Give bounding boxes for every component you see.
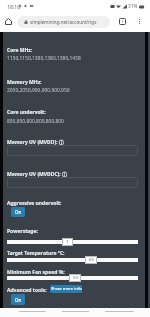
staticText: Show more info bbox=[51, 286, 82, 292]
staticText: 18:16 bbox=[7, 3, 21, 10]
staticText: On bbox=[15, 297, 22, 303]
staticText: Powerstage: bbox=[7, 228, 38, 235]
staticText: Memory MHz: bbox=[7, 79, 42, 86]
button[interactable]: simplemining.net/account/rigs bbox=[17, 16, 110, 28]
button[interactable]: 1 bbox=[62, 238, 73, 246]
staticText: Core undervolt: bbox=[7, 109, 46, 116]
button[interactable]: More options bbox=[133, 15, 146, 28]
button[interactable]: On bbox=[11, 207, 25, 217]
staticText: Memory UV (MVDD): ⓘ bbox=[7, 139, 64, 146]
staticText: Target Temperature °C: bbox=[7, 250, 65, 257]
button[interactable]: 50 bbox=[69, 274, 81, 282]
button[interactable]: 65 bbox=[85, 256, 97, 264]
staticText: Advanced tools: bbox=[7, 287, 47, 294]
staticText: 850,850,800,800,800,800 bbox=[7, 118, 64, 125]
button[interactable]: On bbox=[11, 294, 25, 305]
staticText: Memory UV (MVDDC): ⓘ bbox=[7, 171, 68, 178]
staticText: 2050,2050,900,900,900,950 bbox=[7, 87, 70, 94]
staticText: 1150,1150,1380,1380,1380,1438 bbox=[7, 55, 81, 62]
staticText: On bbox=[15, 209, 22, 215]
staticText: 65 bbox=[89, 257, 94, 263]
button[interactable]: Home bbox=[2, 15, 14, 27]
staticText: Core MHz: bbox=[7, 47, 33, 54]
staticText: 1 bbox=[121, 19, 124, 24]
staticText: Aggressive undervolt: bbox=[7, 200, 62, 207]
button[interactable]: Tabs bbox=[116, 15, 129, 28]
staticText: 1 bbox=[66, 239, 69, 245]
staticText: simplemining.net/account/rigs bbox=[30, 19, 97, 25]
button[interactable] bbox=[7, 145, 138, 156]
staticText: Minimum Fan speed %: bbox=[7, 269, 65, 276]
staticText: 31% bbox=[128, 3, 138, 10]
staticText: 50 bbox=[73, 275, 78, 281]
button[interactable]: Show more info bbox=[50, 285, 82, 293]
button[interactable] bbox=[7, 177, 138, 188]
